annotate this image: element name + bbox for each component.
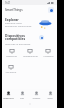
staticText: Refrigeradores bbox=[23, 55, 38, 58]
button[interactable]: Lavadoras bbox=[39, 47, 57, 59]
button[interactable]: Automat. bbox=[29, 91, 43, 100]
button[interactable]: Profile bbox=[48, 7, 54, 13]
staticText: Dispositivos bbox=[3, 97, 14, 100]
button[interactable]: Refrigeradores bbox=[21, 47, 39, 59]
button[interactable]: Televisores bbox=[2, 47, 21, 59]
button[interactable]: Vida bbox=[15, 91, 29, 100]
staticText: Explorar bbox=[5, 17, 19, 21]
staticText: 9:41 bbox=[5, 1, 11, 5]
staticText: Menú bbox=[47, 97, 53, 100]
staticText: Aire acond. bbox=[5, 71, 17, 74]
staticText: SmartThings bbox=[5, 8, 23, 12]
staticText: Televisores bbox=[6, 55, 17, 58]
staticText: Descubre cómo aprovechar SmartThings bbox=[5, 22, 32, 28]
staticText: Dispositivos compatibles bbox=[5, 33, 26, 41]
button[interactable]: Menú bbox=[43, 91, 57, 100]
staticText: Automat. bbox=[32, 97, 41, 100]
button[interactable]: Dispositivos bbox=[2, 91, 15, 100]
staticText: Lavadoras bbox=[43, 55, 54, 58]
button[interactable]: Aire acond. bbox=[2, 63, 20, 75]
staticText: Mira todo lo que puede funcionar con Sma… bbox=[5, 43, 35, 47]
staticText: Vida bbox=[20, 97, 24, 100]
